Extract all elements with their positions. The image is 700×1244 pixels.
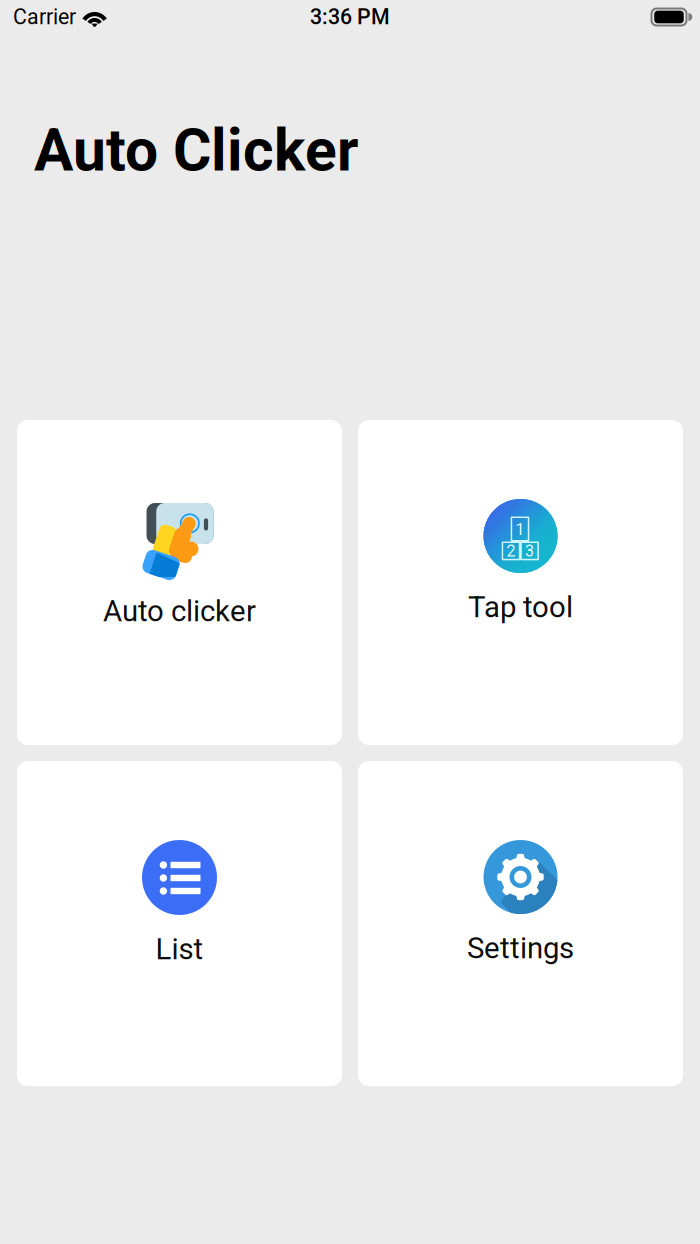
staticText: Auto Clicker xyxy=(34,116,358,185)
staticText: 3:36 PM xyxy=(310,4,390,29)
button[interactable]: 1 xyxy=(358,420,683,745)
button[interactable]: List xyxy=(17,761,342,1086)
button[interactable]: Auto clicker xyxy=(17,420,342,745)
button[interactable]: Settings xyxy=(358,761,683,1086)
staticText: 2 xyxy=(506,542,515,560)
staticText: Tap tool xyxy=(468,590,573,624)
staticText: List xyxy=(155,932,203,966)
staticText: Auto clicker xyxy=(103,594,256,628)
staticText: 1 xyxy=(515,520,524,539)
staticText: Carrier xyxy=(13,4,76,29)
staticText: 3 xyxy=(525,542,534,560)
staticText: Settings xyxy=(467,931,574,965)
